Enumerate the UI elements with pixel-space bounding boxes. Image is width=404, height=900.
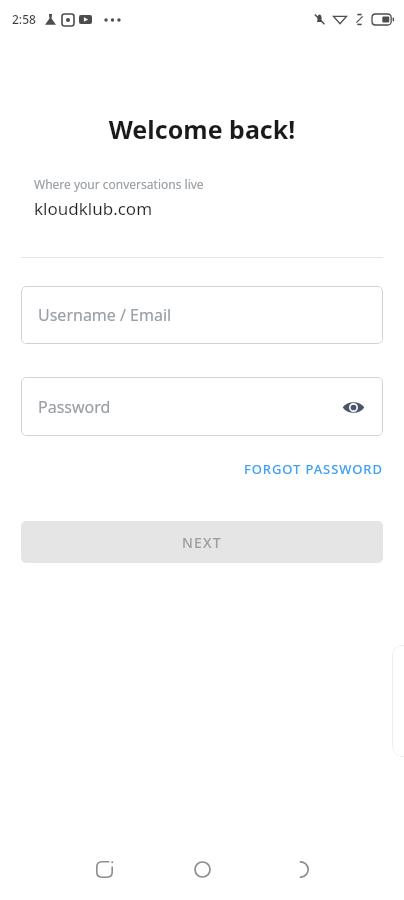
staticText: 2:58: [12, 11, 36, 27]
staticText: Username / Email: [38, 304, 172, 326]
button[interactable]: Home: [178, 845, 226, 893]
staticText: NEXT: [182, 533, 222, 552]
button[interactable]: FORGOT PASSWORD: [200, 456, 383, 482]
staticText: kloudklub.com: [34, 197, 153, 220]
button[interactable]: Password: [21, 377, 383, 436]
staticText: FORGOT PASSWORD: [244, 460, 383, 478]
staticText: Where your conversations live: [34, 176, 204, 192]
staticText: Password: [38, 396, 111, 418]
button[interactable]: Back: [276, 845, 324, 893]
button[interactable]: Recents: [80, 845, 128, 893]
staticText: Welcome back!: [0, 112, 404, 146]
button[interactable]: Show password: [337, 391, 369, 423]
button[interactable]: Username / Email: [21, 286, 383, 344]
button[interactable]: NEXT: [21, 521, 383, 563]
